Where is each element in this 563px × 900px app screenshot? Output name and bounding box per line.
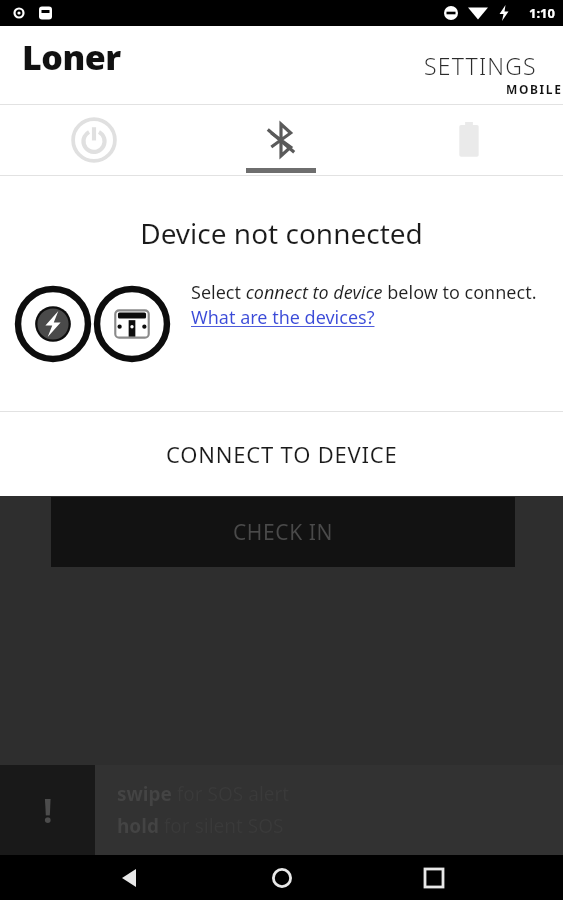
other: Loner Bridge device [15, 286, 91, 362]
staticText: Select connect to device below to connec… [191, 280, 537, 305]
button[interactable]: Recent apps [410, 855, 458, 900]
staticText: swipe for SOS alert [117, 781, 290, 807]
button[interactable]: Back [105, 855, 153, 900]
button[interactable]: Bluetooth device [187, 105, 375, 175]
button[interactable]: ! [0, 765, 563, 855]
button[interactable]: SETTINGS [418, 42, 543, 89]
button[interactable]: CHECK IN [51, 497, 515, 567]
button[interactable]: Battery status [375, 105, 563, 175]
staticText: hold for silent SOS [117, 813, 284, 839]
staticText: Device not connected [0, 214, 563, 252]
button[interactable]: Monitoring status [0, 105, 187, 175]
staticText: ! [43, 787, 53, 833]
staticText: Loner [22, 34, 121, 80]
button[interactable]: What are the devices? [191, 305, 375, 330]
staticText: SETTINGS [424, 50, 537, 81]
button[interactable]: CONNECT TO DEVICE [0, 412, 563, 496]
button[interactable]: Home [258, 855, 306, 900]
staticText: 1:10 [529, 4, 555, 22]
other: Loner M6 device [94, 286, 170, 362]
staticText: CONNECT TO DEVICE [166, 439, 398, 469]
staticText: MOBILE [506, 81, 563, 97]
button[interactable]: Loner Mobile [22, 34, 563, 97]
staticText: CHECK IN [233, 518, 334, 547]
